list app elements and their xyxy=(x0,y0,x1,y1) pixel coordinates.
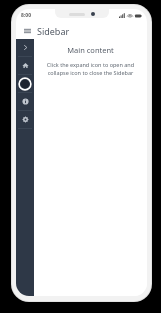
staticText: Click the expand icon to open and collap… xyxy=(40,61,141,77)
button[interactable]: Settings xyxy=(16,111,34,128)
staticText: Sidebar xyxy=(37,25,70,37)
button[interactable]: Open navigation menu xyxy=(22,25,33,36)
button[interactable]: Expand sidebar xyxy=(16,39,34,56)
staticText: Main content xyxy=(67,45,114,55)
button[interactable]: Home xyxy=(16,57,34,74)
button[interactable]: Information xyxy=(16,93,34,110)
staticText: 8:00 xyxy=(21,12,31,19)
button[interactable]: Profile xyxy=(16,75,34,92)
